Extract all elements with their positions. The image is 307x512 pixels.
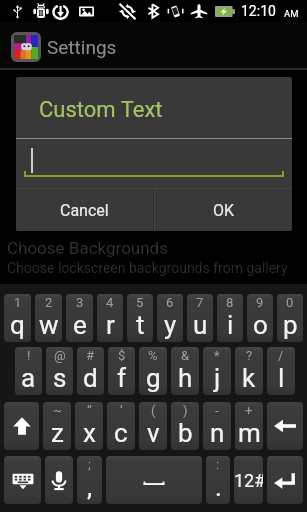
- staticText: e: [73, 310, 87, 340]
- staticText: #: [86, 348, 95, 363]
- button[interactable]: 3: [66, 294, 93, 342]
- staticText: ‘: [120, 403, 123, 418]
- staticText: o: [253, 310, 268, 340]
- button[interactable]: /: [267, 347, 295, 395]
- staticText: .: [215, 472, 222, 502]
- button[interactable]: 9: [247, 294, 273, 342]
- button[interactable]: !: [15, 347, 42, 395]
- staticText: !: [27, 348, 31, 363]
- button[interactable]: 12#: [234, 456, 263, 504]
- staticText: AM: [284, 8, 299, 19]
- staticText: 8: [226, 295, 234, 310]
- staticText: 1: [14, 295, 22, 310]
- button[interactable]: -: [203, 402, 231, 450]
- button[interactable]: Voice input: [45, 456, 73, 504]
- button[interactable]: Shift: [4, 402, 39, 450]
- staticText: q: [10, 310, 25, 340]
- button[interactable]: 7: [187, 294, 213, 342]
- staticText: “: [87, 403, 92, 418]
- button[interactable]: 6: [157, 294, 183, 342]
- staticText: u: [193, 310, 208, 340]
- staticText: (: [151, 403, 156, 418]
- button[interactable]: 2: [35, 294, 62, 342]
- staticText: 9: [256, 295, 264, 310]
- button[interactable]: %: [139, 347, 167, 395]
- staticText: /: [278, 348, 284, 363]
- staticText: b: [178, 418, 193, 448]
- staticText: %: [148, 348, 158, 363]
- button[interactable]: $: [108, 347, 135, 395]
- staticText: :: [216, 457, 220, 472]
- button[interactable]: Backspace: [267, 402, 303, 450]
- staticText: *: [214, 348, 220, 363]
- staticText: l: [278, 363, 285, 393]
- staticText: p: [283, 310, 298, 340]
- button[interactable]: Enter: [267, 456, 303, 504]
- staticText: h: [178, 363, 193, 393]
- button[interactable]: ‘: [107, 402, 135, 450]
- staticText: 6: [166, 295, 174, 310]
- button[interactable]: @: [46, 347, 73, 395]
- staticText: g: [146, 363, 161, 393]
- button[interactable]: 8: [217, 294, 243, 342]
- staticText: ,: [87, 472, 93, 502]
- button[interactable]: :: [206, 456, 230, 504]
- staticText: &: [181, 348, 190, 363]
- staticText: @: [54, 348, 66, 363]
- button[interactable]: “: [75, 402, 103, 450]
- button[interactable]: ?: [235, 347, 263, 395]
- button[interactable]: OK: [155, 189, 292, 231]
- staticText: k: [242, 363, 256, 393]
- staticText: j: [214, 363, 221, 393]
- staticText: Custom Text: [39, 97, 163, 123]
- staticText: d: [83, 363, 98, 393]
- staticText: n: [210, 418, 225, 448]
- staticText: +: [245, 403, 253, 418]
- button[interactable]: #: [77, 347, 104, 395]
- staticText: m: [238, 418, 261, 448]
- staticText: f: [117, 363, 127, 393]
- button[interactable]: ;: [77, 456, 102, 504]
- staticText: OK: [213, 201, 235, 220]
- staticText: s: [53, 363, 67, 393]
- button[interactable]: Space: [106, 456, 202, 504]
- staticText: ;: [88, 457, 91, 472]
- button[interactable]: ): [171, 402, 199, 450]
- button[interactable]: +: [235, 402, 263, 450]
- staticText: v: [147, 418, 160, 448]
- button[interactable]: 5: [127, 294, 153, 342]
- button[interactable]: 1: [4, 294, 31, 342]
- staticText: r: [106, 310, 115, 340]
- staticText: ): [183, 403, 188, 418]
- staticText: 4: [106, 295, 114, 310]
- staticText: z: [51, 418, 64, 448]
- staticText: Choose lockscreen backgrounds from galle…: [7, 260, 288, 276]
- staticText: c: [114, 418, 128, 448]
- staticText: Cancel: [60, 201, 109, 220]
- staticText: Settings: [47, 36, 117, 58]
- button[interactable]: Keyboard settings: [4, 456, 41, 504]
- staticText: i: [227, 310, 234, 340]
- button[interactable]: 0: [277, 294, 303, 342]
- staticText: 5: [136, 295, 144, 310]
- staticText: w: [39, 310, 59, 340]
- staticText: Choose Backgrounds: [7, 238, 168, 258]
- staticText: 2: [45, 295, 53, 310]
- staticText: 7: [196, 295, 204, 310]
- button[interactable]: ~: [43, 402, 71, 450]
- staticText: ~: [53, 403, 62, 418]
- staticText: x: [83, 418, 96, 448]
- staticText: 0: [286, 295, 294, 310]
- staticText: a: [21, 363, 36, 393]
- staticText: y: [164, 310, 177, 340]
- staticText: 12#: [234, 470, 263, 491]
- staticText: t: [136, 310, 145, 340]
- staticText: ?: [246, 348, 253, 363]
- button[interactable]: &: [171, 347, 199, 395]
- staticText: -: [215, 403, 219, 418]
- staticText: 12:10: [241, 3, 276, 19]
- button[interactable]: Cancel: [16, 189, 153, 231]
- button[interactable]: (: [139, 402, 167, 450]
- button[interactable]: 4: [97, 294, 123, 342]
- button[interactable]: *: [203, 347, 231, 395]
